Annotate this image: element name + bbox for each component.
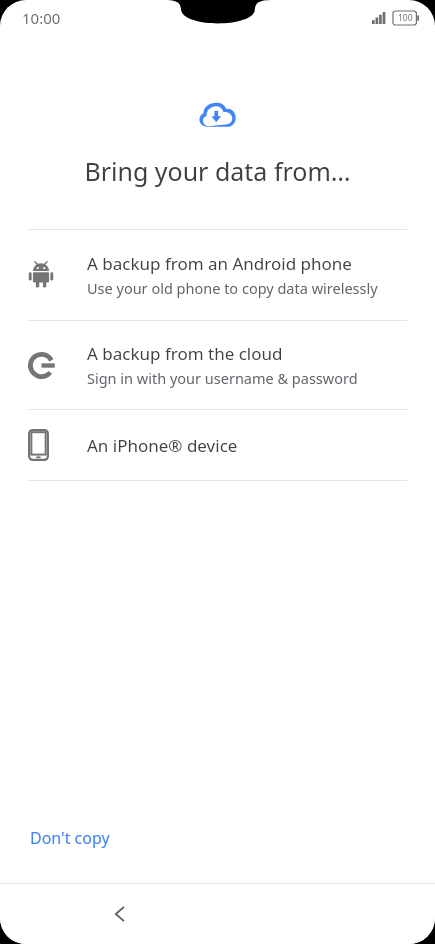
button[interactable]: Don't copy xyxy=(16,819,124,857)
staticText: A backup from the cloud xyxy=(87,342,283,365)
button[interactable]: A backup from the cloud xyxy=(0,321,435,409)
button[interactable]: Back xyxy=(96,890,144,938)
button[interactable]: An iPhone® device xyxy=(0,410,435,480)
staticText: 100 xyxy=(398,12,413,24)
staticText: Use your old phone to copy data wireless… xyxy=(87,278,378,298)
staticText: A backup from an Android phone xyxy=(87,252,352,275)
button[interactable]: A backup from an Android phone xyxy=(0,230,435,320)
staticText: An iPhone® device xyxy=(87,434,238,457)
staticText: 10:00 xyxy=(22,8,61,28)
staticText: Don't copy xyxy=(30,827,110,849)
staticText: Sign in with your username & password xyxy=(87,368,358,388)
staticText: Bring your data from… xyxy=(0,154,435,188)
